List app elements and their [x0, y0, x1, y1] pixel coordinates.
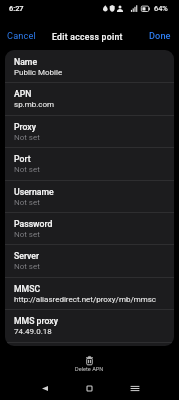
button[interactable]: Proxy — [5, 115, 174, 147]
staticText: sp.mb.com — [14, 100, 55, 109]
staticText: Edit access point — [52, 32, 123, 42]
button[interactable]: Delete APN — [63, 352, 116, 377]
button[interactable]: Port — [5, 147, 174, 179]
staticText: Cancel — [7, 30, 36, 41]
staticText: Not set — [14, 133, 40, 142]
staticText: Port — [14, 154, 31, 164]
button[interactable]: Password — [5, 212, 174, 244]
staticText: http://aliasredirect.net/proxy/mb/mmsc — [14, 295, 157, 304]
staticText: Not set — [14, 165, 40, 174]
staticText: Server — [14, 251, 40, 261]
button[interactable]: Cancel — [0, 26, 44, 45]
button[interactable]: MMSC — [5, 277, 174, 309]
staticText: Not set — [14, 262, 40, 271]
staticText: Not set — [14, 230, 40, 239]
button[interactable]: MMS proxy — [5, 309, 174, 341]
staticText: APN — [14, 89, 32, 99]
button[interactable]: Name — [5, 50, 174, 82]
button[interactable]: Recent apps — [118, 377, 151, 399]
staticText: Username — [14, 187, 54, 197]
staticText: Public Mobile — [14, 68, 63, 77]
staticText: 6:27 — [9, 4, 24, 13]
staticText: Delete APN — [75, 366, 104, 373]
staticText: MMS proxy — [14, 316, 58, 326]
staticText: Done — [149, 30, 171, 41]
button[interactable]: Home — [73, 377, 106, 399]
staticText: Not set — [14, 198, 40, 207]
button[interactable]: Back — [28, 377, 61, 399]
staticText: 74.49.0.18 — [14, 327, 52, 336]
button[interactable]: APN — [5, 82, 174, 114]
staticText: Proxy — [14, 122, 36, 132]
button[interactable]: Username — [5, 180, 174, 212]
button[interactable]: Server — [5, 244, 174, 276]
staticText: 64% — [154, 4, 168, 13]
button[interactable]: Done — [141, 26, 179, 45]
staticText: Name — [14, 57, 38, 67]
staticText: MMSC — [14, 284, 41, 294]
staticText: Password — [14, 219, 53, 229]
